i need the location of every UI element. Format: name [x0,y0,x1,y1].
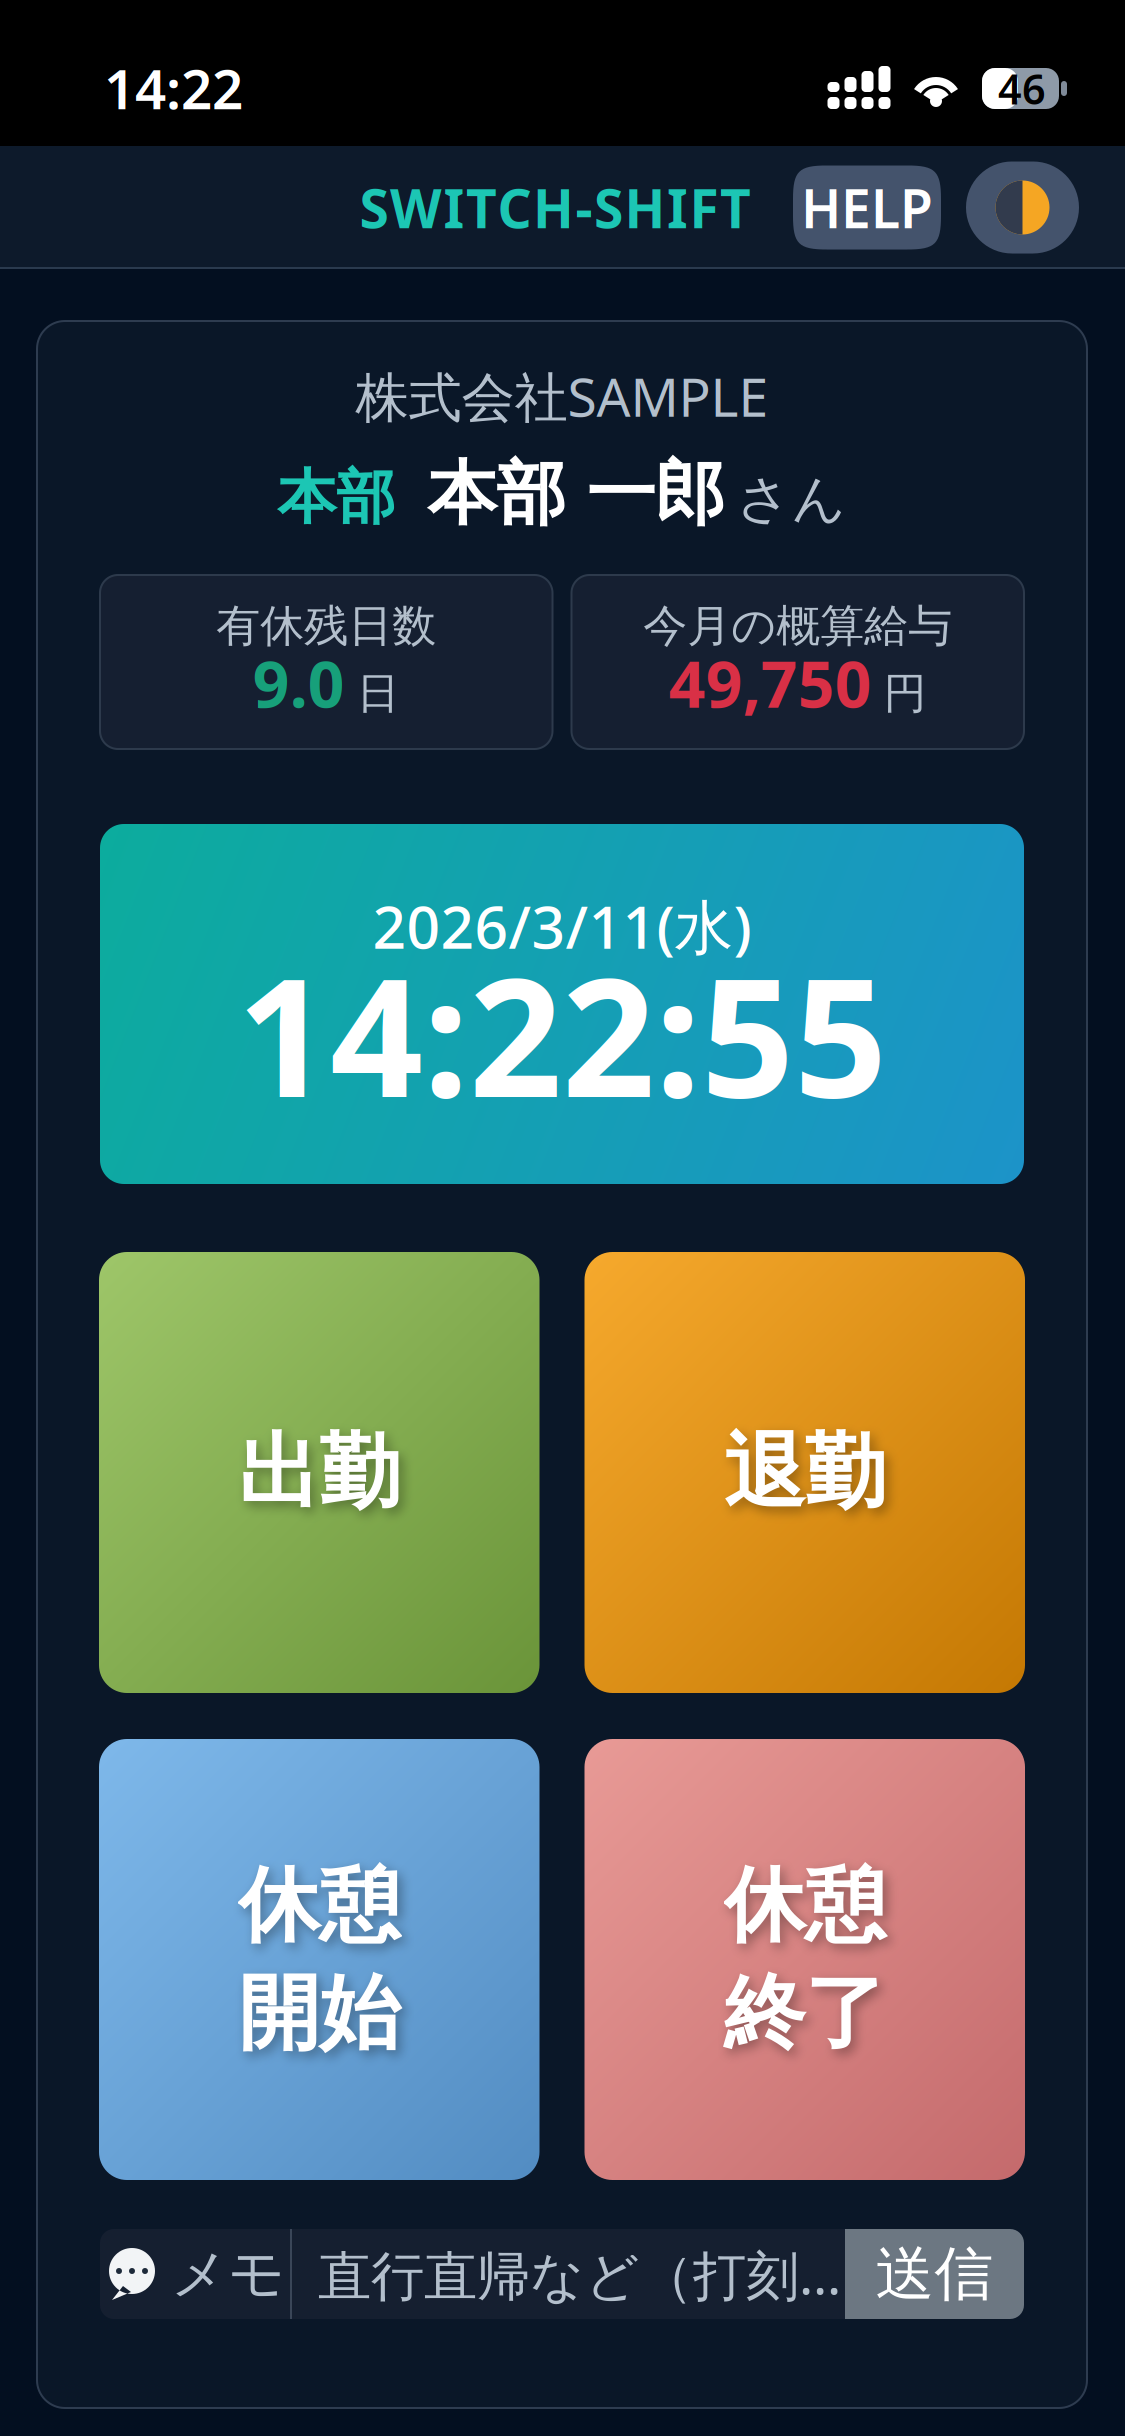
staticText: 開始 [238,1963,400,2063]
staticText: 終了 [724,1963,886,2063]
staticText: 出勤 [238,1423,400,1522]
staticText: 46 [998,61,1046,116]
staticText: 今月の概算給与 [643,599,952,653]
staticText: 本部 一郎 [427,451,724,537]
staticText: 14:22 [104,52,243,124]
staticText: 株式会社SAMPLE [355,361,768,431]
staticText: メモ [171,2240,285,2308]
button[interactable]: 休憩 [99,1739,539,2180]
button[interactable]: 休憩 [584,1739,1025,2180]
staticText: 送信 [875,2238,993,2310]
button[interactable]: 送信 [845,2229,1024,2319]
staticText: 有休残日数 [216,599,436,653]
button[interactable]: Appearance [966,161,1079,253]
staticText: さん [736,467,846,532]
staticText: SWITCH-SHIFT [359,172,751,243]
staticText: 退勤 [724,1423,886,1522]
staticText: 日 [357,667,400,720]
button[interactable]: 出勤 [99,1252,539,1693]
staticText: 14:22:55 [237,926,887,1142]
staticText: 円 [884,667,927,720]
staticText: 休憩 [724,1856,886,1955]
staticText: 9.0 [253,640,345,725]
staticText: 49,750 [669,640,872,725]
staticText: HELP [801,172,933,243]
staticText: 本部 [277,461,395,534]
staticText: 直行直帰など（打刻また... [318,2238,845,2310]
staticText: 休憩 [238,1856,400,1955]
button[interactable]: 退勤 [584,1252,1025,1693]
staticText: 2026/3/11(水) [372,887,751,965]
button[interactable]: HELP [793,165,941,249]
